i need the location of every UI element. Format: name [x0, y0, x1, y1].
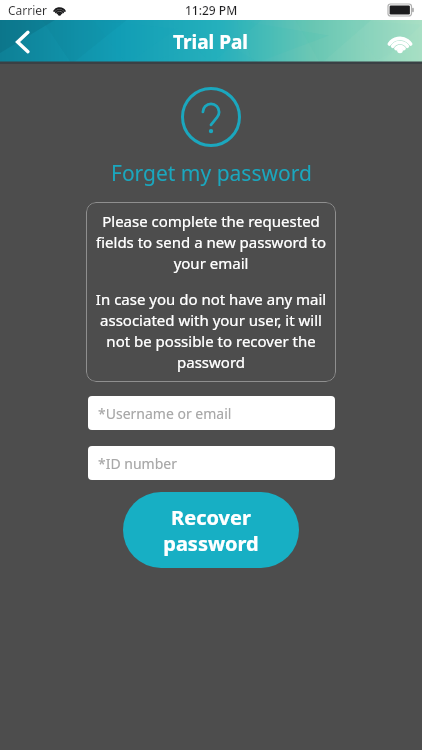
staticText: 11:29 PM — [185, 2, 238, 18]
staticText: Carrier — [8, 2, 48, 18]
staticText: Recover password — [163, 504, 259, 557]
staticText: Please complete the requested fields to … — [94, 211, 328, 274]
button[interactable]: *ID number — [88, 446, 335, 480]
staticText: Forget my password — [111, 159, 312, 188]
staticText: In case you do not have any mail associa… — [94, 289, 328, 373]
button[interactable]: *Username or email — [88, 396, 335, 430]
button[interactable]: Recover password — [123, 492, 299, 568]
button[interactable]: Connection status — [378, 20, 422, 64]
staticText: Trial Pal — [173, 29, 249, 55]
staticText: *Username or email — [98, 404, 232, 423]
button[interactable]: Back — [0, 20, 44, 64]
staticText: *ID number — [98, 454, 178, 473]
